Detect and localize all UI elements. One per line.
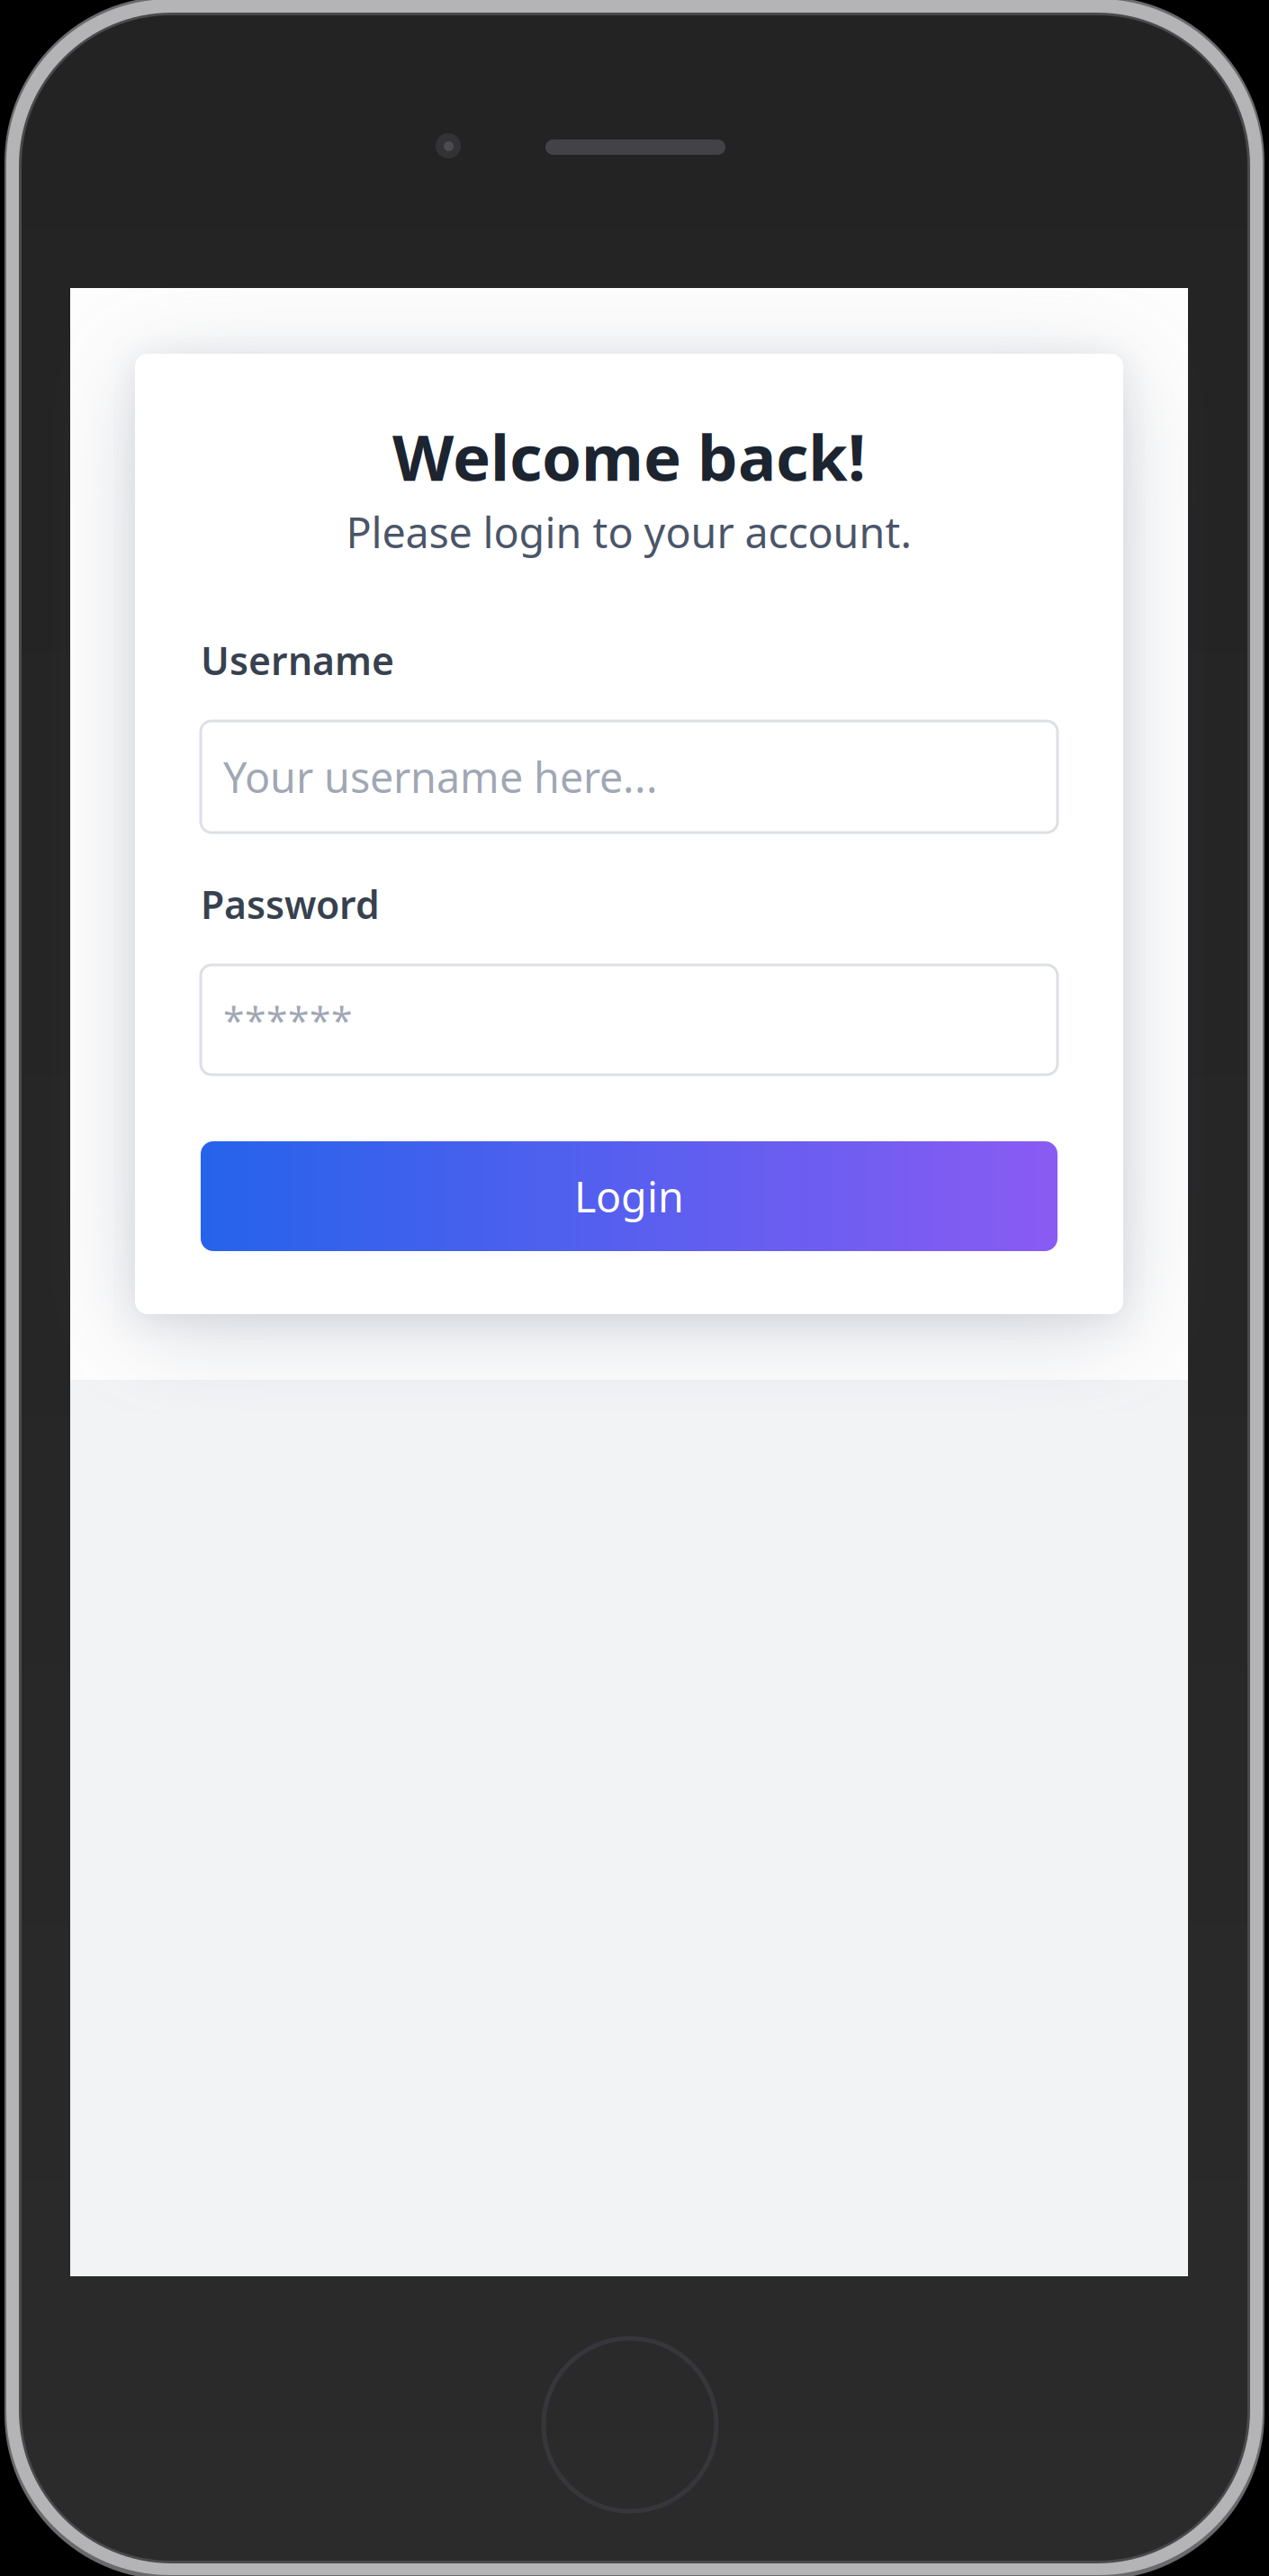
- staticText: ******: [223, 994, 353, 1045]
- button[interactable]: Username text field: [201, 721, 1057, 833]
- staticText: Your username here...: [223, 749, 658, 805]
- button[interactable]: Password text field: [201, 965, 1057, 1075]
- button[interactable]: Login: [201, 1141, 1057, 1251]
- staticText: Login: [574, 1168, 684, 1224]
- staticText: Username: [201, 635, 394, 686]
- staticText: Welcome back!: [392, 414, 866, 498]
- staticText: Password: [201, 878, 380, 930]
- staticText: Please login to your account.: [346, 504, 912, 560]
